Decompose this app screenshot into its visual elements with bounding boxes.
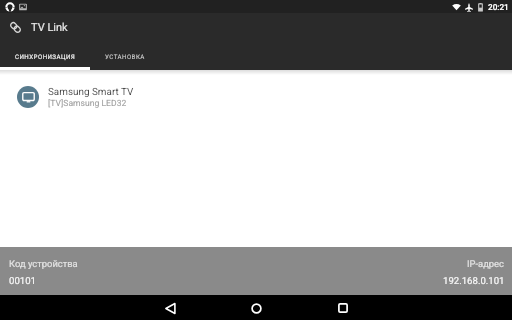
staticText: IP-адрес xyxy=(467,258,505,269)
button[interactable]: Samsung Smart TV xyxy=(0,77,512,117)
staticText: 20:21 xyxy=(488,2,509,12)
staticText: [TV]Samsung LED32 xyxy=(48,98,127,108)
staticText: СИНХРОНИЗАЦИЯ xyxy=(15,53,76,60)
staticText: 192.168.0.101 xyxy=(443,275,505,286)
staticText: Код устройства xyxy=(9,258,78,269)
button[interactable]: УСТАНОВКА xyxy=(90,42,160,70)
button[interactable]: Recents xyxy=(331,296,355,320)
staticText: 00101 xyxy=(9,275,36,286)
staticText: УСТАНОВКА xyxy=(105,53,145,60)
button[interactable]: Home xyxy=(244,296,268,320)
button[interactable]: Back xyxy=(158,296,182,320)
staticText: Samsung Smart TV xyxy=(48,86,134,98)
button[interactable]: Link xyxy=(5,17,26,38)
button[interactable]: СИНХРОНИЗАЦИЯ xyxy=(0,42,90,70)
staticText: TV Link xyxy=(31,21,68,34)
